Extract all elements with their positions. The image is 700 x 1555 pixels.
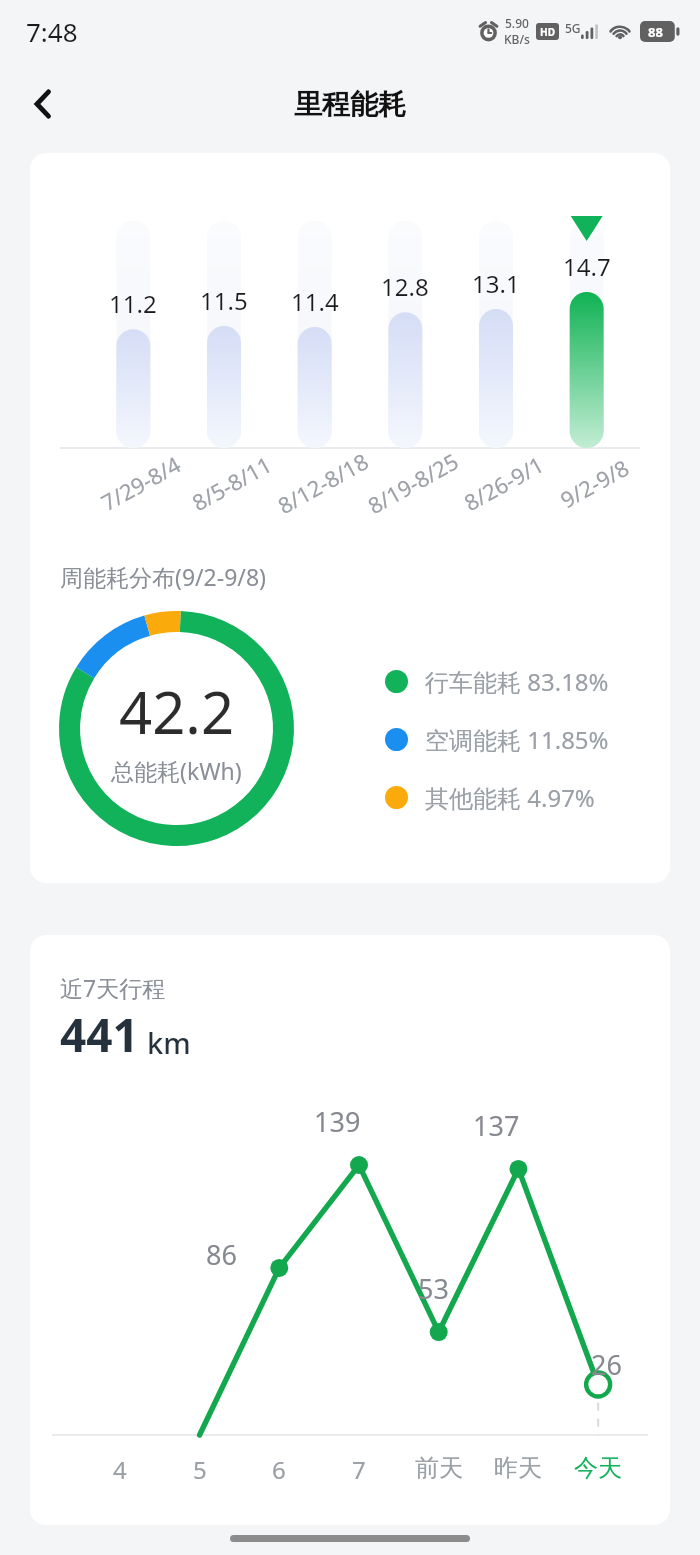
button[interactable]: 其他能耗 4.97%: [385, 781, 595, 814]
staticText: 5.90: [505, 15, 529, 31]
staticText: 11.2: [109, 287, 157, 320]
staticText: KB/s: [504, 31, 530, 47]
staticText: 11.5: [200, 284, 248, 317]
staticText: 86: [206, 1236, 237, 1273]
staticText: 9/2-9/8: [555, 452, 634, 514]
staticText: 7/29-8/4: [95, 449, 186, 517]
staticText: 昨天: [494, 1453, 542, 1483]
staticText: 5G: [565, 20, 581, 36]
staticText: 8/12-8/18: [272, 446, 373, 520]
staticText: 周能耗分布(9/2-9/8): [60, 561, 266, 592]
button[interactable]: 空调能耗 11.85%: [385, 723, 609, 756]
staticText: 11.4: [291, 285, 339, 318]
staticText: 8/19-8/25: [362, 446, 463, 520]
staticText: 前天: [415, 1453, 463, 1483]
button[interactable]: 近7天行程: [30, 935, 670, 1525]
staticText: 其他能耗 4.97%: [425, 781, 595, 814]
staticText: 空调能耗 11.85%: [425, 723, 609, 756]
staticText: 441: [60, 1003, 139, 1066]
staticText: 42.2: [119, 672, 235, 751]
staticText: 行车能耗 83.18%: [425, 665, 609, 698]
button[interactable]: 行车能耗 83.18%: [385, 665, 609, 698]
staticText: 里程能耗: [294, 87, 406, 122]
staticText: km: [147, 1023, 191, 1062]
staticText: 近7天行程: [60, 972, 166, 1003]
staticText: 8/26-9/1: [458, 449, 549, 517]
staticText: 7: [352, 1453, 366, 1486]
staticText: 8/5-8/11: [186, 449, 277, 517]
staticText: 今天: [574, 1453, 622, 1483]
staticText: 13.1: [472, 267, 520, 300]
staticText: 5: [193, 1453, 207, 1486]
staticText: 137: [473, 1107, 520, 1144]
button[interactable]: 11.2: [30, 153, 670, 883]
staticText: 总能耗(kWh): [111, 755, 242, 786]
staticText: 12.8: [381, 270, 429, 303]
staticText: 14.7: [563, 250, 611, 283]
staticText: 4: [113, 1453, 127, 1486]
staticText: 7:48: [26, 14, 78, 49]
staticText: HD: [540, 25, 555, 39]
button[interactable]: Back: [14, 74, 74, 134]
staticText: 53: [418, 1270, 449, 1307]
staticText: 6: [272, 1453, 286, 1486]
staticText: 88: [648, 23, 663, 41]
staticText: 26: [591, 1346, 622, 1383]
staticText: 139: [314, 1103, 361, 1140]
